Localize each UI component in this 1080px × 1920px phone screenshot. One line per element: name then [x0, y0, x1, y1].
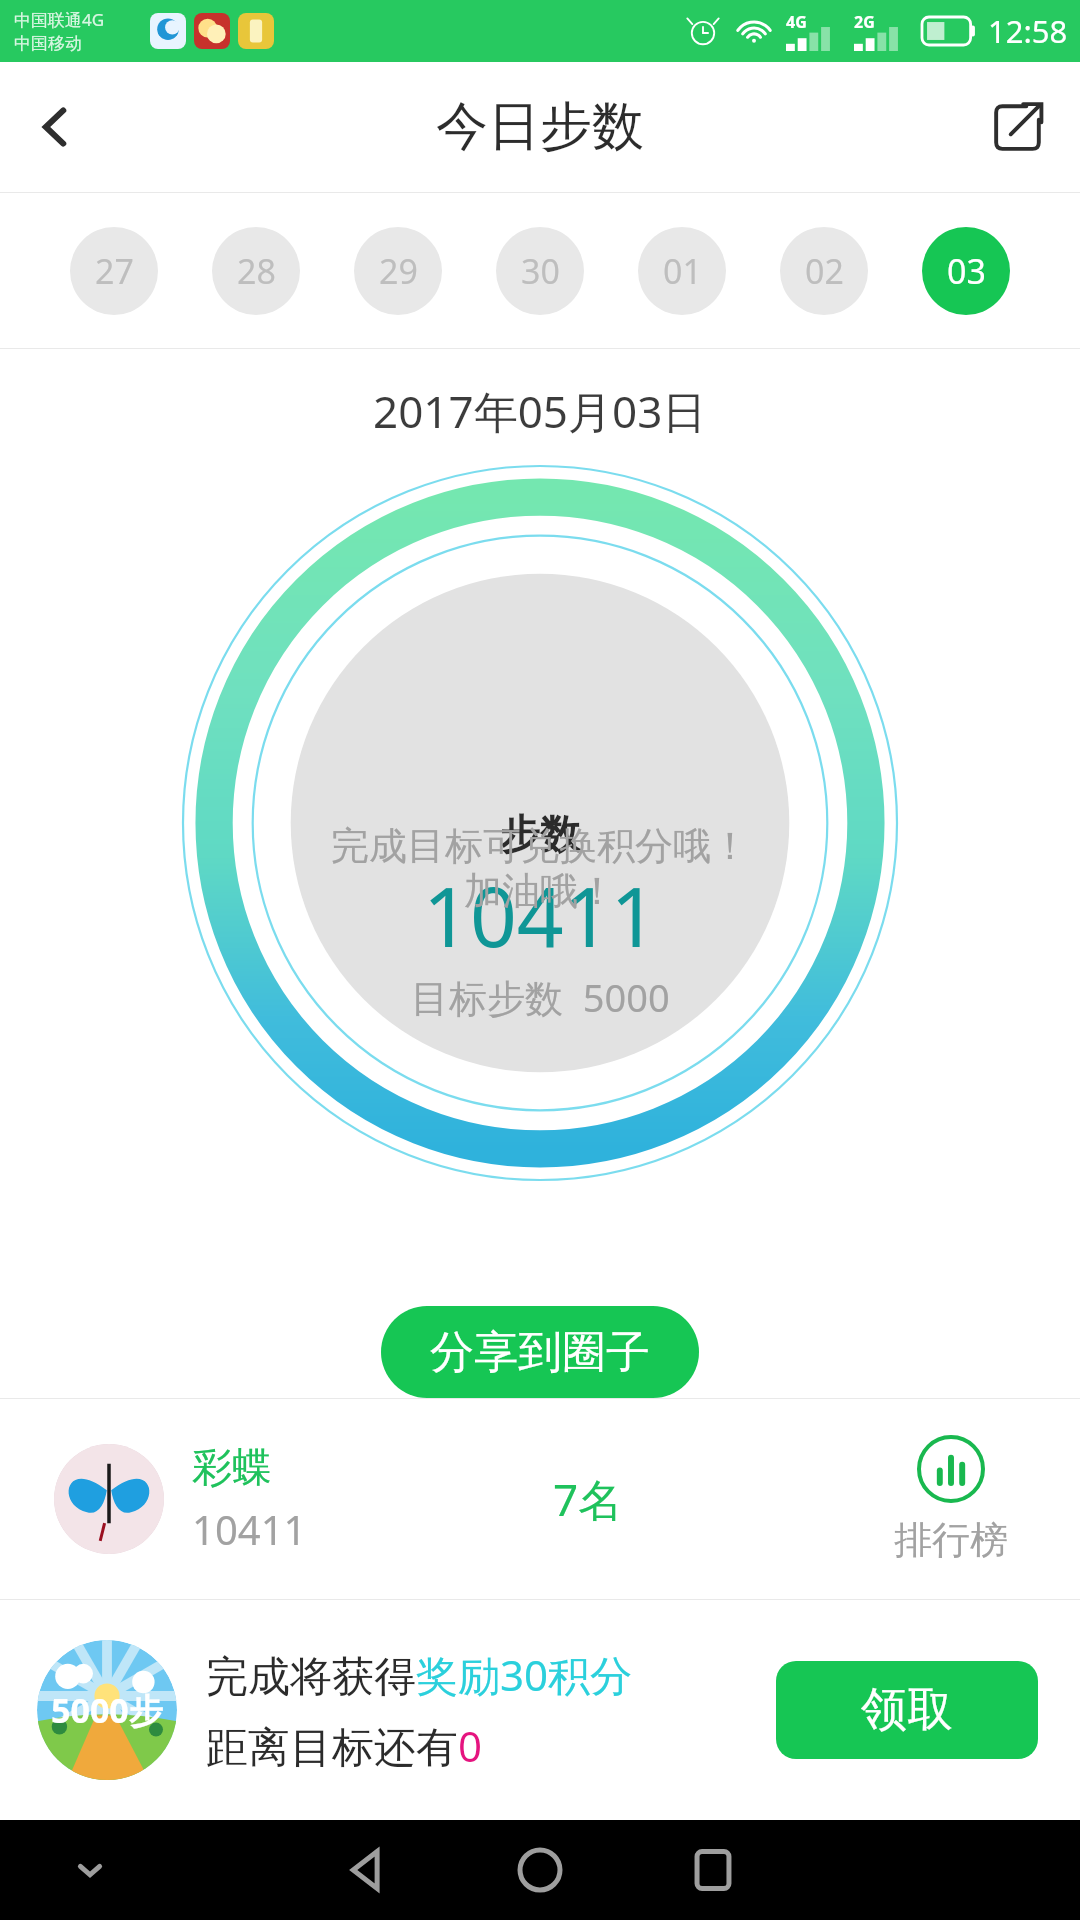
button[interactable]: 分享到圈子 — [381, 1306, 699, 1398]
button[interactable]: Home — [495, 1825, 585, 1915]
button[interactable]: 排行榜 — [894, 1434, 1008, 1564]
staticText: 29 — [379, 248, 418, 294]
staticText: 30 — [521, 248, 560, 294]
staticText: 今日步数 — [436, 94, 644, 160]
staticText: 2G — [854, 11, 875, 33]
staticText: 4G — [786, 11, 807, 33]
staticText: 5000步 — [51, 1687, 163, 1733]
button[interactable]: 03 — [922, 227, 1010, 315]
staticText: 中国移动 — [14, 33, 82, 54]
staticText: 分享到圈子 — [430, 1325, 650, 1380]
staticText: 03 — [947, 248, 986, 294]
staticText: 完成将获得奖励30积分 — [206, 1646, 633, 1703]
staticText: 目标步数 5000 — [411, 971, 670, 1023]
button[interactable]: Recents — [668, 1825, 758, 1915]
button[interactable]: Back — [322, 1825, 412, 1915]
staticText: 12:58 — [988, 10, 1068, 52]
button[interactable]: 27 — [70, 227, 158, 315]
button[interactable]: 30 — [496, 227, 584, 315]
staticText: 28 — [237, 248, 276, 294]
staticText: 距离目标还有0 — [206, 1717, 483, 1774]
staticText: 彩蝶 — [192, 1442, 272, 1492]
staticText: 完成目标可兑换积分哦！ 加油哦！ — [182, 822, 898, 916]
button[interactable]: 02 — [780, 227, 868, 315]
button[interactable]: 彩蝶 — [0, 1399, 1080, 1599]
staticText: 步数 — [500, 809, 580, 859]
button[interactable]: Hide — [50, 1830, 130, 1910]
staticText: 2017年05月03日 — [373, 381, 707, 441]
button[interactable]: Share — [978, 87, 1058, 167]
button[interactable]: 领取 — [776, 1661, 1038, 1759]
staticText: 中国联通4G — [14, 8, 105, 31]
button[interactable]: 01 — [638, 227, 726, 315]
staticText: 10411 — [192, 1502, 307, 1556]
staticText: 27 — [95, 248, 134, 294]
staticText: 7名 — [553, 1469, 623, 1529]
button[interactable]: 28 — [212, 227, 300, 315]
button[interactable]: 29 — [354, 227, 442, 315]
staticText: 领取 — [861, 1681, 953, 1739]
staticText: 10411 — [423, 859, 658, 971]
button[interactable]: Back — [10, 82, 100, 172]
staticText: 02 — [805, 248, 844, 294]
staticText: 01 — [663, 248, 702, 294]
staticText: 排行榜 — [894, 1516, 1008, 1564]
